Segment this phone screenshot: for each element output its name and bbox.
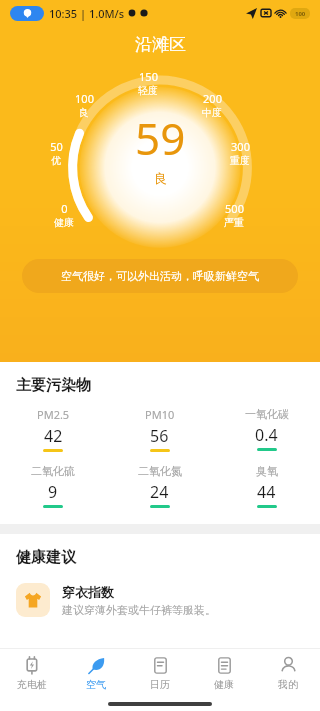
button[interactable]: 穿衣指数 (16, 583, 304, 617)
staticText: 健康建议 (16, 548, 76, 567)
staticText: 沿滩区 (135, 34, 186, 55)
staticText: 59 (135, 108, 186, 168)
staticText: 150 (139, 69, 158, 84)
staticText: 0.4 (255, 424, 278, 446)
button[interactable]: 健康 (192, 649, 256, 697)
staticText: 中度 (202, 106, 222, 119)
button[interactable]: 臭氧 (213, 464, 320, 508)
staticText: 24 (150, 481, 169, 503)
button[interactable]: 空气很好，可以外出活动，呼吸新鲜空气 (22, 259, 298, 293)
staticText: 二氧化硫 (31, 464, 75, 478)
staticText: 充电桩 (17, 678, 47, 691)
button[interactable]: 充电桩 (0, 649, 64, 697)
staticText: 我的 (278, 678, 298, 691)
staticText: 42 (44, 425, 63, 447)
staticText: 优 (51, 154, 61, 167)
staticText: 44 (257, 481, 276, 503)
button[interactable]: 二氧化硫 (0, 464, 106, 508)
staticText: 200 (203, 91, 222, 106)
button[interactable]: 日历 (128, 649, 192, 697)
staticText: 建议穿薄外套或牛仔裤等服装。 (62, 603, 216, 617)
staticText: 主要污染物 (16, 376, 91, 395)
staticText: 良 (154, 170, 167, 186)
staticText: 空气 (86, 678, 106, 691)
button[interactable]: 空气 (64, 649, 128, 697)
button[interactable]: 二氧化氮 (106, 464, 213, 508)
staticText: 50 (50, 139, 63, 154)
staticText: 56 (150, 425, 169, 447)
staticText: PM10 (145, 407, 175, 422)
staticText: 穿衣指数 (62, 584, 114, 600)
staticText: 臭氧 (256, 464, 278, 478)
staticText: 重度 (230, 154, 250, 167)
staticText: 严重 (224, 216, 244, 229)
staticText: 健康 (54, 216, 74, 229)
staticText: 0 (61, 201, 68, 216)
staticText: 300 (231, 139, 250, 154)
staticText: 100 (295, 10, 306, 18)
button[interactable]: 一氧化碳 (213, 407, 320, 451)
staticText: 10:35 | 1.0M/s (49, 6, 125, 21)
staticText: 100 (75, 91, 94, 106)
staticText: 轻度 (138, 84, 158, 97)
staticText: 500 (225, 201, 244, 216)
button[interactable]: PM10 (106, 407, 213, 452)
staticText: 日历 (150, 678, 170, 691)
staticText: 良 (79, 106, 89, 119)
staticText: 二氧化氮 (138, 464, 182, 478)
staticText: 空气很好，可以外出活动，呼吸新鲜空气 (61, 269, 259, 283)
staticText: 健康 (214, 678, 234, 691)
staticText: 9 (48, 481, 58, 503)
button[interactable]: PM2.5 (0, 407, 106, 452)
staticText: 一氧化碳 (245, 407, 289, 421)
button[interactable]: 我的 (256, 649, 320, 697)
staticText: PM2.5 (37, 407, 70, 422)
